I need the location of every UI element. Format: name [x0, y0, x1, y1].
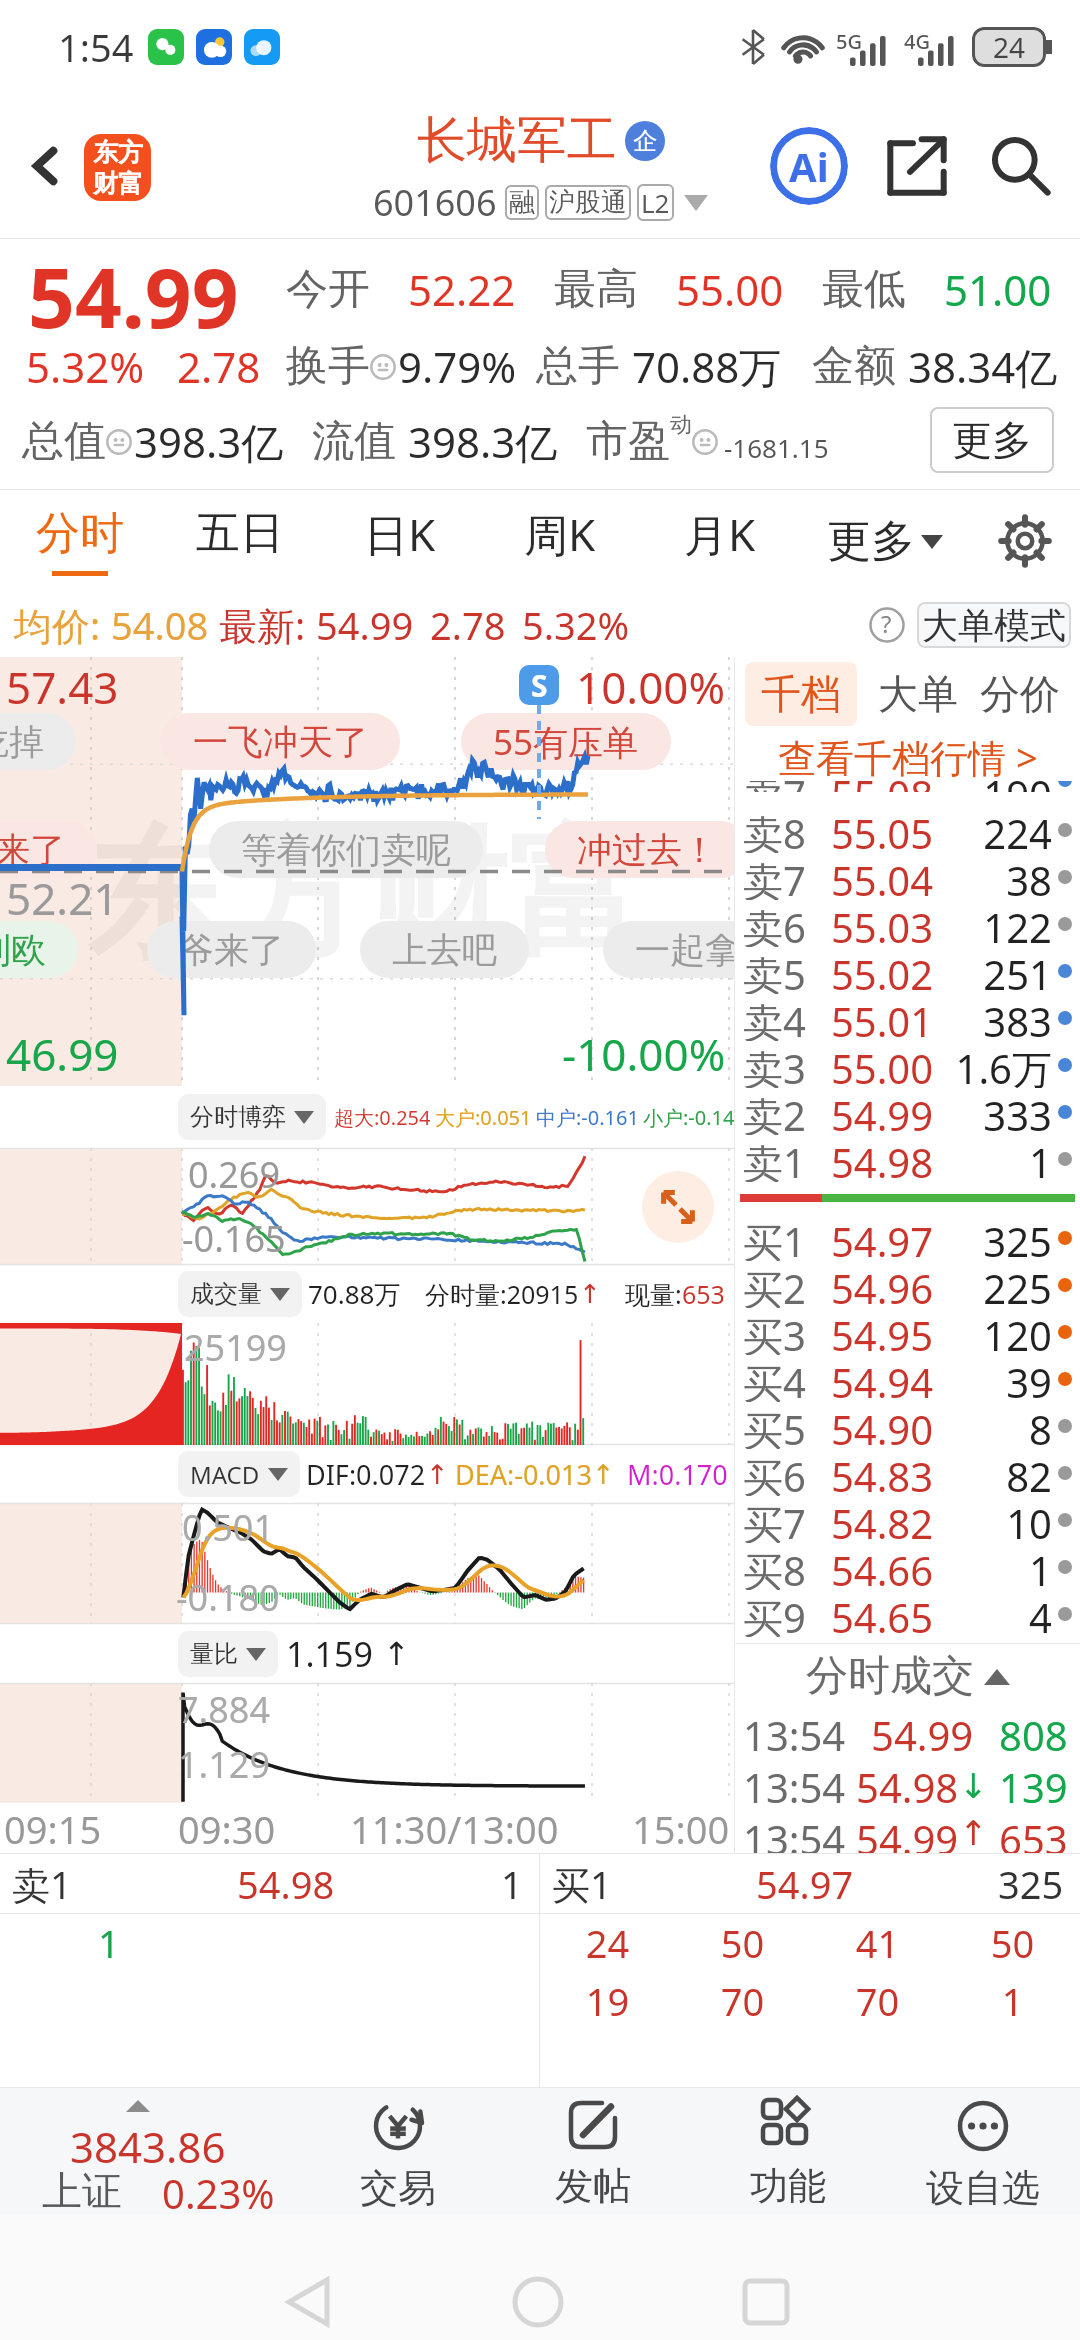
button[interactable]: 设自选 [885, 2088, 1080, 2214]
button[interactable]: Home [488, 2252, 588, 2340]
staticText: 一起拿 [635, 928, 740, 972]
button[interactable]: 卖1 [0, 1854, 539, 1913]
button[interactable]: Back [258, 2252, 358, 2340]
button[interactable]: 日K [320, 490, 480, 592]
button[interactable]: 买1 [735, 1214, 1080, 1261]
button[interactable]: 更多 [930, 407, 1054, 473]
button[interactable]: 卖2 [735, 1088, 1080, 1135]
button[interactable]: 量比 [190, 1631, 266, 1677]
staticText: 13:54 [743, 1812, 846, 1853]
staticText: 54.98 [237, 1858, 335, 1910]
button[interactable]: 买6 [735, 1449, 1080, 1496]
staticText: 吃掉 [0, 720, 44, 764]
staticText: 买6 [743, 1449, 821, 1496]
staticText: 换手 [286, 340, 370, 393]
button[interactable]: 分时成交 [735, 1644, 1080, 1708]
staticText: 653 [999, 1812, 1068, 1853]
staticText: 东方 [93, 137, 143, 168]
button[interactable]: Search [988, 133, 1054, 199]
button[interactable]: 卖5 [735, 947, 1080, 994]
button[interactable]: Back [8, 128, 84, 204]
staticText: 查看千档行情 > [778, 731, 1038, 781]
button[interactable]: 买8 [735, 1543, 1080, 1590]
button[interactable]: 成交量 [190, 1271, 290, 1317]
staticText: 1 [943, 1543, 1052, 1590]
button[interactable]: 买9 [735, 1590, 1080, 1637]
staticText: 70.88万 [308, 1276, 401, 1312]
staticText: 1.129 [178, 1740, 271, 1789]
button[interactable]: East Money [84, 134, 151, 201]
staticText: -10.00% [562, 1024, 726, 1084]
staticText: 卖2 [743, 1088, 821, 1135]
staticText: 55.02 [821, 947, 943, 994]
button[interactable]: Expand chart [642, 1171, 714, 1243]
button[interactable]: 分价 [980, 669, 1060, 719]
staticText: 57.43 [6, 657, 119, 717]
staticText: 分时成交 [806, 1650, 974, 1703]
button[interactable]: 买4 [735, 1355, 1080, 1402]
button[interactable]: 大单模式 [917, 602, 1071, 648]
staticText: 70.88万 [632, 338, 812, 395]
staticText: Ai [789, 139, 829, 193]
button[interactable]: 卖7 [735, 853, 1080, 900]
button[interactable]: 买7 [735, 1496, 1080, 1543]
button[interactable]: AI assistant [770, 127, 848, 205]
staticText: 动 [670, 411, 692, 439]
button[interactable]: 卖6 [735, 900, 1080, 947]
staticText: 最新: [219, 599, 306, 651]
button[interactable]: Share [886, 135, 948, 197]
staticText: 大户:0.051 [435, 1104, 532, 1131]
staticText: 2.78 [177, 338, 261, 395]
staticText: 长城军工 [417, 109, 617, 172]
staticText: 190 [943, 781, 1052, 792]
button[interactable]: 买3 [735, 1308, 1080, 1355]
button[interactable]: 买5 [735, 1402, 1080, 1449]
button[interactable]: 五日 [160, 490, 320, 592]
staticText: 冲过去！ [577, 828, 717, 872]
staticText: 10.00% [576, 657, 726, 717]
staticText: 融 [509, 186, 535, 219]
button[interactable]: 更多 [800, 490, 970, 592]
button[interactable]: 分时 [0, 490, 160, 592]
staticText: 企 [633, 126, 657, 156]
staticText: 55.08 [821, 781, 943, 792]
staticText: 09:30 [178, 1803, 276, 1852]
button[interactable]: 卖3 [735, 1041, 1080, 1088]
staticText: 买1 [552, 1858, 612, 1910]
staticText: 55.00 [676, 261, 822, 318]
button[interactable]: Settings [970, 490, 1080, 592]
staticText: 一飞冲天了 [193, 720, 368, 764]
button[interactable]: 卖8 [735, 806, 1080, 853]
staticText: 1 [943, 1135, 1052, 1182]
button[interactable]: 发帖 [495, 2088, 690, 2214]
staticText: 总手 [536, 340, 620, 393]
staticText: 52.22 [408, 261, 554, 318]
staticText: DEA:-0.013 [455, 1456, 592, 1493]
staticText: 东方财富 [87, 808, 647, 984]
button[interactable]: 卖1 [735, 1135, 1080, 1182]
staticText: 52.21 [6, 868, 119, 928]
staticText: -0.180 [176, 1573, 280, 1622]
button[interactable]: 月K [640, 490, 800, 592]
staticText: 122 [943, 900, 1052, 947]
staticText: 54.98 [856, 1760, 959, 1812]
button[interactable]: 千档 [761, 669, 841, 719]
button[interactable]: Recent apps [716, 2252, 816, 2340]
staticText: 沪股通 [549, 186, 627, 219]
button[interactable]: 大单 [878, 669, 958, 719]
button[interactable]: 功能 [690, 2088, 885, 2214]
button[interactable]: 买1 [540, 1854, 1080, 1913]
staticText: 更多 [827, 514, 915, 569]
button[interactable]: 买2 [735, 1261, 1080, 1308]
button[interactable]: 交易 [300, 2088, 495, 2214]
staticText: 120 [943, 1308, 1052, 1355]
staticText: 46.99 [6, 1024, 119, 1084]
button[interactable]: 分时博弈 [190, 1094, 314, 1140]
button[interactable]: 3843.86 [0, 2088, 300, 2214]
button[interactable]: 卖7 [735, 781, 1080, 792]
button[interactable]: 周K [480, 490, 640, 592]
button[interactable]: 卖4 [735, 994, 1080, 1041]
staticText: 五日 [196, 506, 284, 561]
button[interactable]: 查看千档行情 > [735, 731, 1080, 781]
button[interactable]: MACD [190, 1451, 288, 1497]
